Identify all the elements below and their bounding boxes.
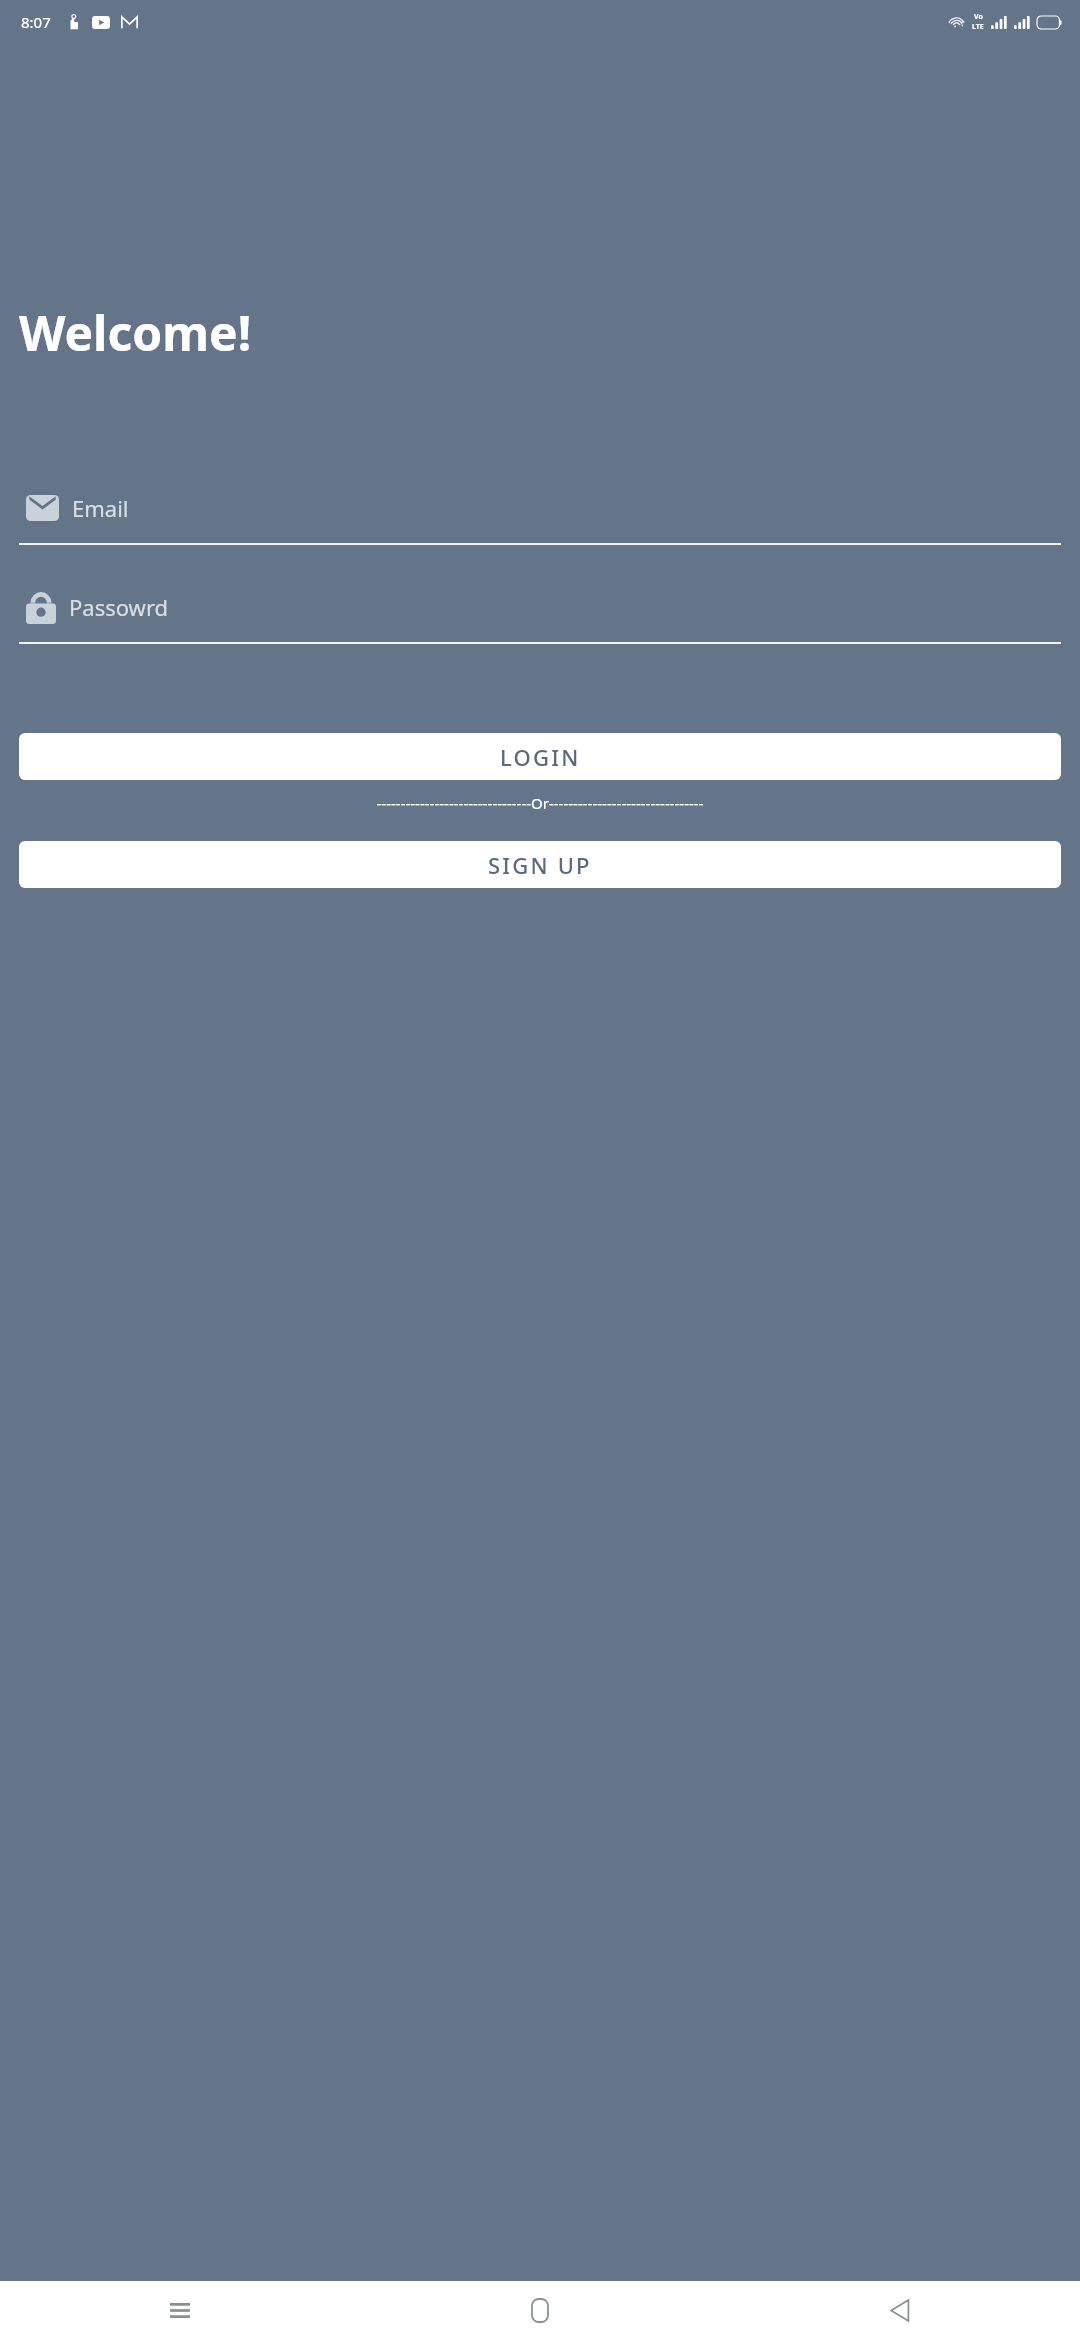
- staticText: LOGIN: [500, 742, 581, 772]
- button[interactable]: SIGN UP: [19, 841, 1061, 888]
- staticText: SIGN UP: [488, 850, 592, 880]
- staticText: Welcome!: [19, 300, 252, 365]
- staticText: Email: [72, 493, 129, 523]
- staticText: 8:07: [21, 12, 51, 32]
- button[interactable]: LOGIN: [19, 733, 1061, 780]
- staticText: --------------------------------Or------…: [376, 793, 704, 813]
- button[interactable]: Home: [360, 2281, 720, 2340]
- staticText: LTE: [972, 22, 984, 32]
- button[interactable]: Back: [720, 2281, 1080, 2340]
- button[interactable]: Recent apps: [0, 2281, 360, 2340]
- button[interactable]: Passowrd: [19, 581, 1061, 644]
- staticText: Passowrd: [69, 592, 169, 622]
- button[interactable]: Email: [19, 482, 1061, 545]
- staticText: Vo: [974, 12, 983, 22]
